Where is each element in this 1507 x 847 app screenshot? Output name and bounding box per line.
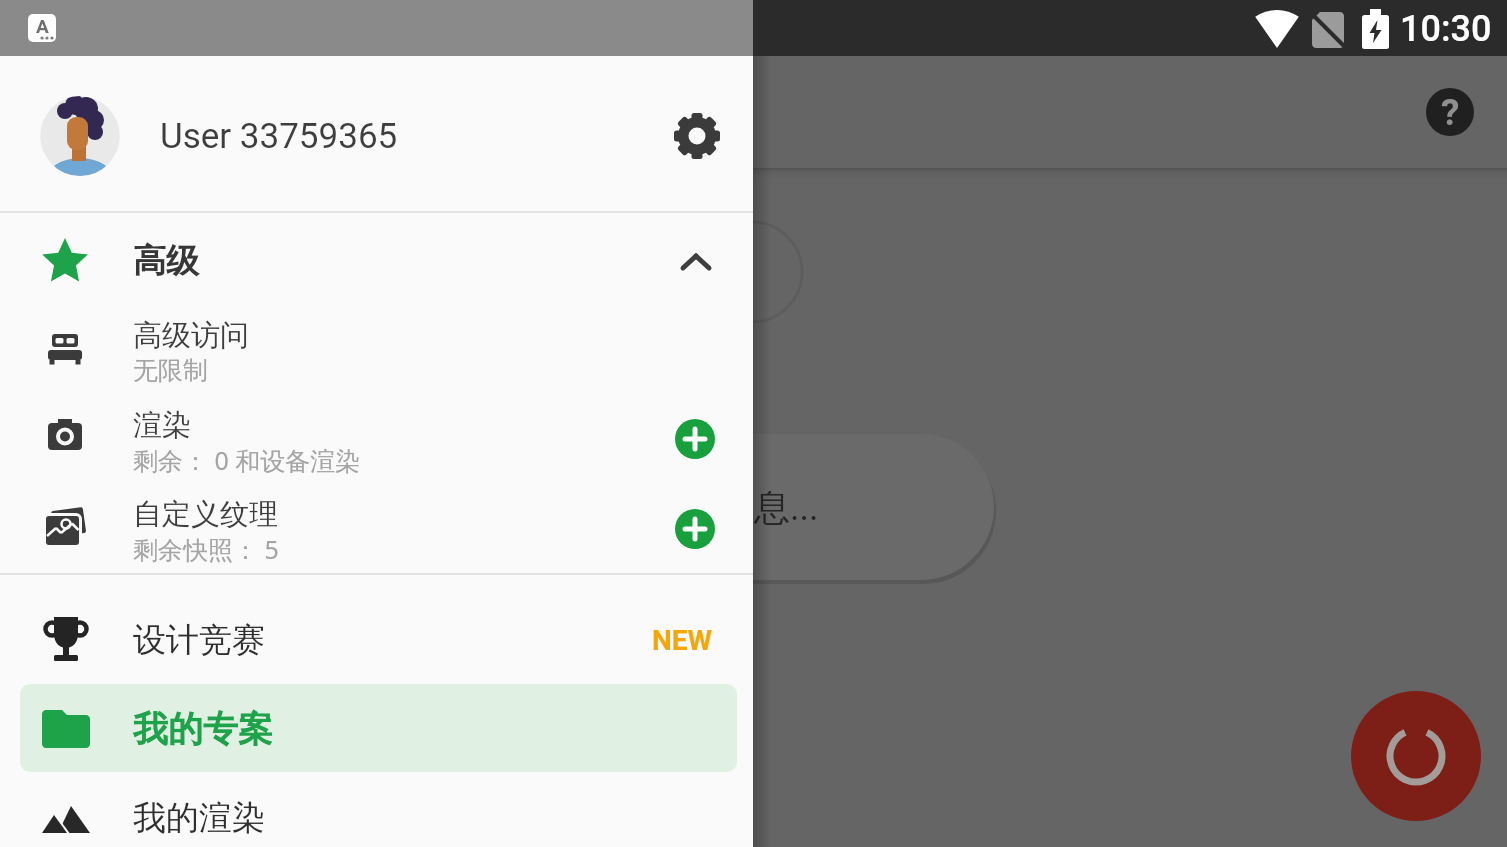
button[interactable] <box>0 398 753 488</box>
staticText: 高级访问 <box>133 317 249 354</box>
button[interactable] <box>675 419 715 459</box>
staticText: 无限制 <box>133 355 208 386</box>
staticText: 息... <box>754 485 819 530</box>
staticText: 我的渲染 <box>133 797 265 839</box>
staticText: 剩余： 0 和设备渲染 <box>133 443 361 477</box>
staticText: 自定义纹理 <box>133 496 278 533</box>
staticText: 10:30 <box>1400 8 1492 50</box>
staticText: NEW <box>652 624 713 657</box>
button[interactable] <box>20 684 737 772</box>
staticText: 设计竞赛 <box>133 619 265 661</box>
button[interactable] <box>661 100 733 172</box>
button[interactable]: ? <box>1426 88 1474 136</box>
button[interactable] <box>0 224 753 299</box>
button[interactable] <box>675 509 715 549</box>
button[interactable] <box>0 308 753 398</box>
button[interactable] <box>681 254 711 270</box>
button[interactable] <box>1351 691 1481 821</box>
button[interactable] <box>0 488 753 573</box>
button[interactable] <box>0 778 753 847</box>
staticText: 剩余快照： 5 <box>133 532 279 566</box>
staticText: 渲染 <box>133 407 191 444</box>
staticText: 高级 <box>133 240 199 282</box>
button[interactable] <box>0 56 753 211</box>
button[interactable] <box>0 600 753 680</box>
staticText: A <box>36 15 49 37</box>
staticText: User 33759365 <box>160 116 398 157</box>
staticText: ? <box>1441 91 1460 134</box>
staticText: 我的专案 <box>133 707 273 751</box>
